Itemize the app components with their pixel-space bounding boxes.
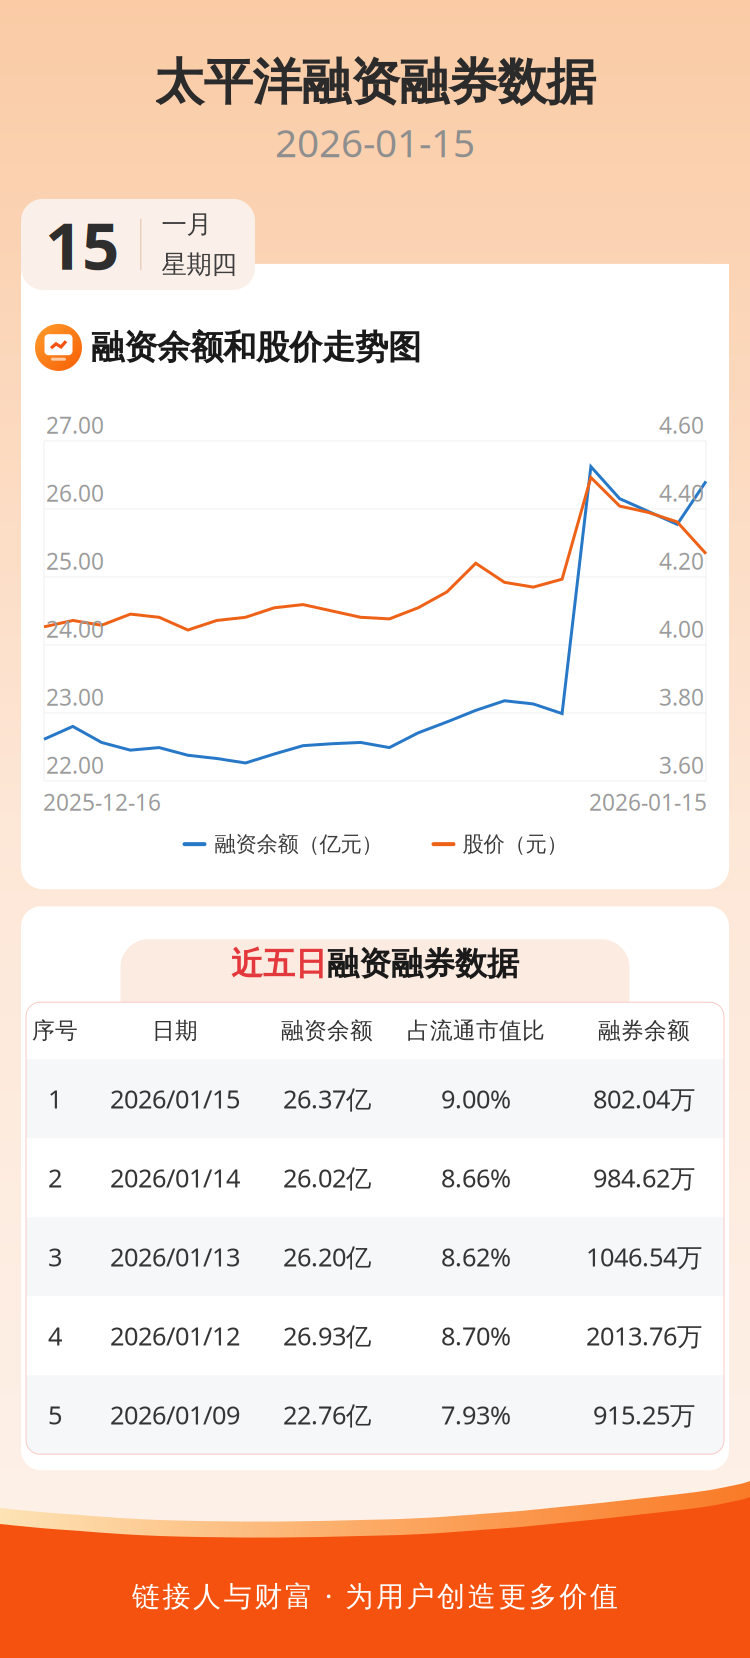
staticText: 26.37亿 — [283, 1082, 371, 1115]
staticText: 近五日 — [231, 944, 327, 983]
staticText: 27.00 — [46, 410, 104, 440]
staticText: 3.60 — [659, 750, 704, 780]
staticText: 3.80 — [659, 682, 704, 712]
staticText: 2026/01/14 — [110, 1161, 240, 1194]
staticText: 2026/01/09 — [110, 1398, 240, 1431]
staticText: 5 — [48, 1398, 62, 1431]
staticText: 9.00% — [441, 1082, 511, 1115]
staticText: 4.60 — [659, 410, 704, 440]
staticText: 8.66% — [441, 1161, 511, 1194]
staticText: 融资余额 — [281, 1017, 373, 1045]
staticText: 一月 — [161, 209, 211, 240]
staticText: 2025-12-16 — [43, 787, 161, 817]
staticText: 15 — [45, 201, 119, 288]
staticText: 融资融券数据 — [327, 944, 519, 983]
staticText: 1046.54万 — [586, 1240, 702, 1273]
staticText: 4.20 — [659, 546, 704, 576]
staticText: 日期 — [152, 1017, 198, 1045]
staticText: 4 — [48, 1319, 62, 1352]
staticText: 2026/01/15 — [110, 1082, 240, 1115]
staticText: 太平洋融资融券数据 — [154, 52, 595, 113]
staticText: 984.62万 — [593, 1161, 695, 1194]
staticText: 915.25万 — [593, 1398, 695, 1431]
staticText: 24.00 — [46, 614, 104, 644]
staticText: 26.00 — [46, 478, 104, 508]
staticText: 2013.76万 — [586, 1319, 702, 1352]
staticText: 23.00 — [46, 682, 104, 712]
staticText: 22.76亿 — [283, 1398, 371, 1431]
staticText: 2026/01/13 — [110, 1240, 240, 1273]
staticText: 26.20亿 — [283, 1240, 371, 1273]
staticText: 融券余额 — [598, 1017, 690, 1045]
staticText: 2 — [48, 1161, 62, 1194]
staticText: 星期四 — [161, 249, 236, 280]
staticText: 4.00 — [659, 614, 704, 644]
staticText: 26.02亿 — [283, 1161, 371, 1194]
staticText: 序号 — [32, 1017, 78, 1045]
staticText: 25.00 — [46, 546, 104, 576]
staticText: 2026-01-15 — [589, 787, 707, 817]
staticText: 2026-01-15 — [275, 117, 475, 168]
staticText: 链接人与财富 · 为用户创造更多价值 — [132, 1577, 618, 1614]
staticText: 融资余额和股价走势图 — [91, 327, 421, 368]
staticText: 7.93% — [441, 1398, 511, 1431]
staticText: 8.70% — [441, 1319, 511, 1352]
staticText: 占流通市值比 — [407, 1017, 545, 1045]
staticText: 2026/01/12 — [110, 1319, 240, 1352]
staticText: 股价（元） — [462, 831, 567, 857]
staticText: 3 — [48, 1240, 62, 1273]
staticText: 融资余额（亿元） — [214, 831, 382, 857]
staticText: 22.00 — [46, 750, 104, 780]
staticText: 4.40 — [659, 478, 704, 508]
staticText: 802.04万 — [593, 1082, 695, 1115]
staticText: 8.62% — [441, 1240, 511, 1273]
staticText: 1 — [48, 1082, 62, 1115]
staticText: 26.93亿 — [283, 1319, 371, 1352]
